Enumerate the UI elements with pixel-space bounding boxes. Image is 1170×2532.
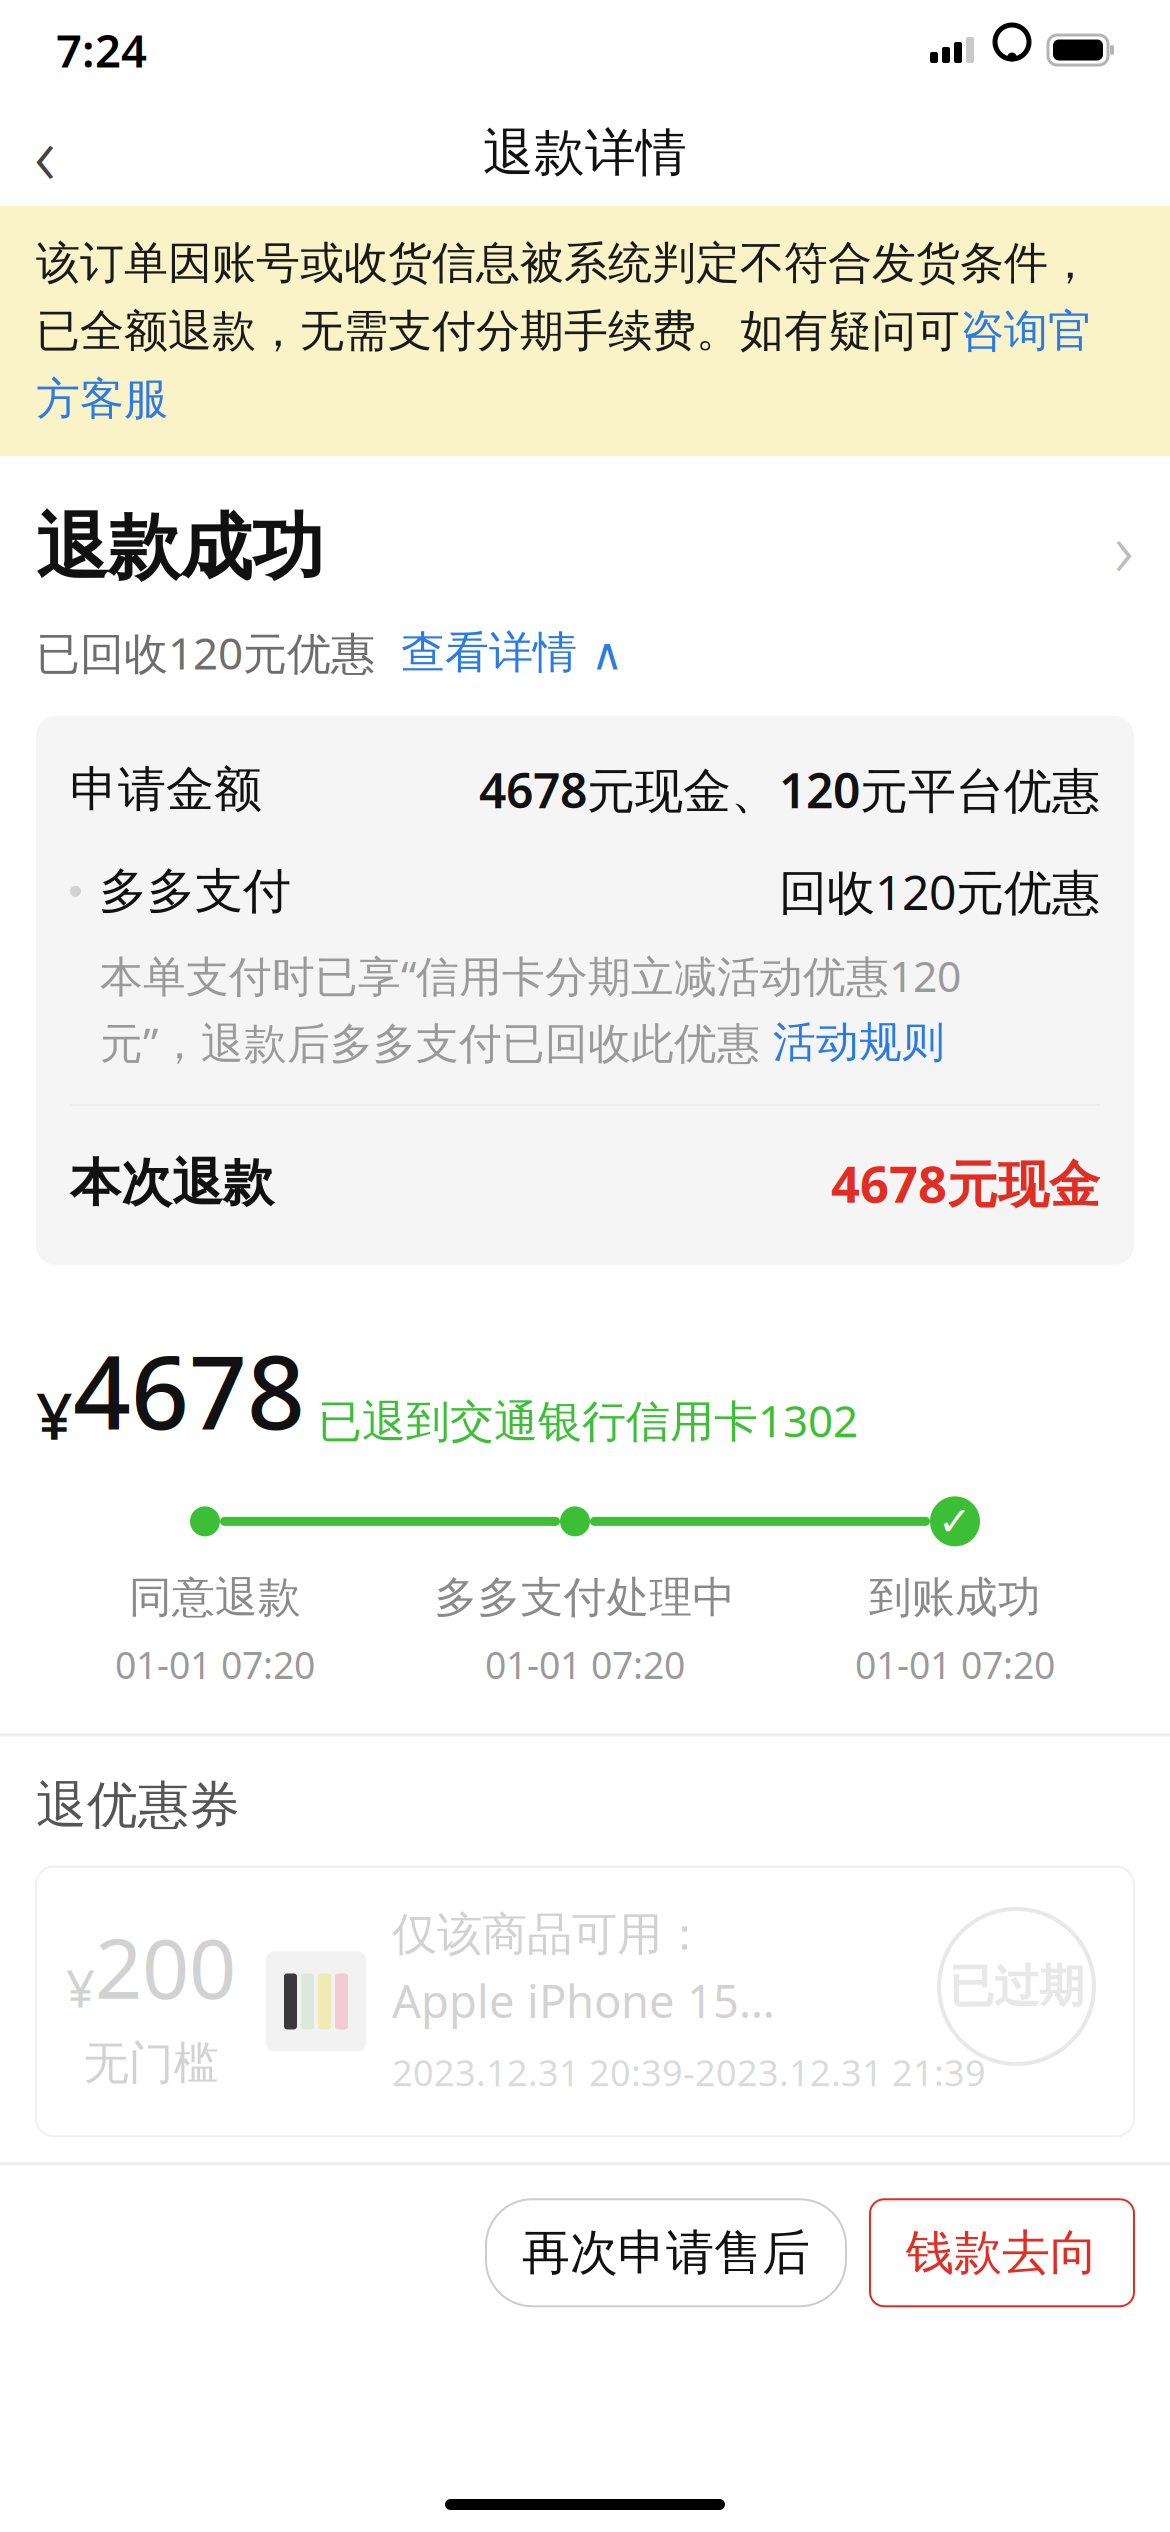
staticText: 多多支付处理中 bbox=[434, 1571, 735, 1624]
staticText: 无门槛 bbox=[83, 2035, 218, 2091]
button[interactable]: 咨询官 bbox=[960, 304, 1092, 358]
staticText: 4678 bbox=[73, 1323, 305, 1457]
staticText: 活动规则 bbox=[773, 1016, 945, 1068]
staticText: 退款成功 bbox=[36, 503, 324, 592]
staticText: 回收120元优惠 bbox=[779, 859, 1100, 923]
staticText: 已退到交通银行信用卡1302 bbox=[305, 1391, 858, 1449]
staticText: 已回收120元优惠 bbox=[36, 623, 375, 682]
staticText: 多多支付 bbox=[99, 862, 291, 921]
staticText: 01-01 07:20 bbox=[115, 1640, 315, 1689]
staticText: 该订单因账号或收货信息被系统判定不符合发货条件， bbox=[36, 236, 1092, 290]
staticText: 7:24 bbox=[56, 20, 147, 80]
staticText: 申请金额 bbox=[70, 760, 262, 819]
staticText: 本单支付时已享“信用卡分期立减活动优惠120 bbox=[100, 947, 961, 1004]
staticText: 已全额退款，无需支付分期手续费。如有疑问可 bbox=[36, 304, 960, 358]
staticText: Apple iPhone 15… bbox=[392, 1970, 775, 2030]
button[interactable]: 钱款去向 bbox=[870, 2199, 1134, 2306]
staticText: › bbox=[1114, 498, 1134, 597]
button[interactable]: 方客服 bbox=[36, 372, 168, 426]
staticText: 再次申请售后 bbox=[522, 2223, 810, 2282]
staticText: ‹ bbox=[34, 98, 56, 208]
staticText: 查看详情 ∧ bbox=[375, 625, 623, 679]
staticText: 2023.12.31 20:39-2023.12.31 21:39 bbox=[392, 2048, 986, 2096]
staticText: 退优惠券 bbox=[36, 1774, 240, 1837]
button[interactable]: 返回 bbox=[0, 108, 90, 198]
staticText: 200 bbox=[95, 1912, 236, 2021]
staticText: 元”，退款后多多支付已回收此优惠 bbox=[100, 1014, 773, 1071]
staticText: 4678元现金 bbox=[831, 1149, 1100, 1217]
button[interactable]: 退款成功 bbox=[0, 456, 1170, 682]
staticText: 4678元现金、120元平台优惠 bbox=[479, 758, 1100, 821]
staticText: 已过期 bbox=[949, 1959, 1084, 2014]
staticText: 仅该商品可用： bbox=[392, 1907, 707, 1962]
staticText: 同意退款 bbox=[129, 1571, 301, 1624]
staticText: ✓ bbox=[938, 1499, 972, 1544]
staticText: 01-01 07:20 bbox=[485, 1640, 685, 1689]
staticText: 钱款去向 bbox=[906, 2223, 1098, 2282]
staticText: ¥ bbox=[36, 1372, 73, 1457]
button[interactable]: ¥ bbox=[0, 1837, 1170, 2136]
button[interactable]: 活动规则 bbox=[773, 1016, 945, 1068]
staticText: 方客服 bbox=[36, 372, 168, 426]
staticText: 本次退款 bbox=[70, 1152, 274, 1214]
staticText: 退款详情 bbox=[483, 122, 687, 184]
button[interactable]: 再次申请售后 bbox=[486, 2199, 846, 2306]
staticText: 01-01 07:20 bbox=[855, 1640, 1055, 1689]
staticText: 咨询官 bbox=[960, 304, 1092, 358]
staticText: 到账成功 bbox=[869, 1571, 1041, 1624]
staticText: ¥ bbox=[66, 1954, 95, 2021]
